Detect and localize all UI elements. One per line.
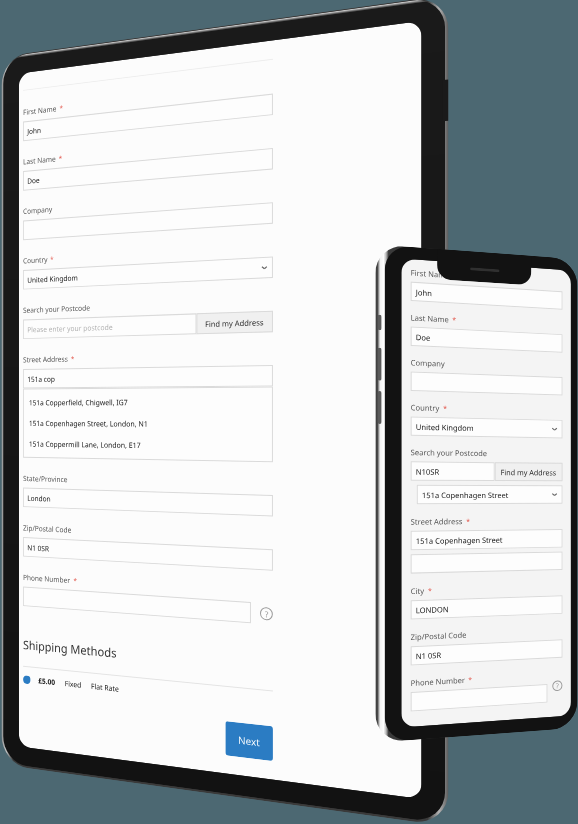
staticText: 151a Coppermill Lane, London, E17 xyxy=(29,439,141,450)
staticText: Phone Number xyxy=(411,675,465,688)
button[interactable]: Volume up xyxy=(377,348,382,381)
staticText: Fixed xyxy=(65,678,81,690)
button[interactable] xyxy=(411,551,562,574)
staticText: * xyxy=(468,674,472,685)
staticText: First Name xyxy=(23,104,57,117)
staticText: Phone Number xyxy=(23,572,71,585)
button[interactable]: United Kingdom xyxy=(23,256,273,290)
staticText: Find my Address xyxy=(205,317,264,329)
button[interactable]: Please enter your postcode xyxy=(23,313,196,339)
staticText: Last Name xyxy=(23,154,56,166)
staticText: Company xyxy=(23,204,53,216)
staticText: Street Address xyxy=(411,516,463,527)
button[interactable]: 151a Copenhagen Street, London, N1 xyxy=(23,413,273,436)
staticText: Last Name xyxy=(411,312,449,324)
button[interactable]: LONDON xyxy=(411,595,562,620)
staticText: First Name xyxy=(411,267,450,280)
staticText: United Kingdom xyxy=(416,422,474,433)
staticText: Find my Address xyxy=(500,467,557,477)
button[interactable]: N1 0SR xyxy=(411,639,562,666)
staticText: N1 0SR xyxy=(416,650,442,661)
staticText: 151a Copenhagen Street xyxy=(422,490,508,500)
staticText: London xyxy=(27,493,51,503)
staticText: * xyxy=(71,354,75,363)
button[interactable]: Help xyxy=(260,607,273,621)
staticText: Street Address xyxy=(23,354,68,364)
staticText: State/Province xyxy=(23,473,68,484)
button[interactable]: John xyxy=(411,282,562,310)
button[interactable] xyxy=(411,371,562,396)
staticText: Doe xyxy=(416,332,431,343)
staticText: Please enter your postcode xyxy=(27,322,113,334)
staticText: 151a Copenhagen Street, London, N1 xyxy=(29,418,149,429)
button[interactable]: Mute switch xyxy=(377,315,382,330)
button[interactable]: N1 0SR xyxy=(23,537,273,571)
staticText: Country xyxy=(23,255,48,265)
staticText: 151a Copenhagen Street xyxy=(416,535,502,546)
staticText: 151a cop xyxy=(27,374,55,384)
button[interactable]: John xyxy=(23,94,273,141)
staticText: N1 0SR xyxy=(27,543,49,553)
staticText: John xyxy=(416,287,432,298)
staticText: Flat Rate xyxy=(91,681,119,694)
button[interactable]: 151a Copenhagen Street xyxy=(417,485,563,504)
staticText: * xyxy=(452,314,456,325)
staticText: Doe xyxy=(27,175,40,186)
staticText: LONDON xyxy=(416,604,449,615)
button[interactable] xyxy=(23,586,251,623)
button[interactable]: Find my Address xyxy=(196,311,273,334)
staticText: * xyxy=(428,585,432,596)
staticText: * xyxy=(50,254,54,264)
staticText: John xyxy=(27,125,42,136)
button[interactable]: Find my Address xyxy=(495,462,562,481)
button[interactable]: Help xyxy=(552,680,562,691)
button[interactable]: 151a Copenhagen Street xyxy=(411,529,562,550)
button[interactable]: N10SR xyxy=(411,461,495,481)
button[interactable]: Power xyxy=(443,79,448,121)
staticText: Search your Postcode xyxy=(411,447,488,458)
button[interactable]: Next xyxy=(225,721,273,761)
staticText: 151a Copperfield, Chigwell, IG7 xyxy=(29,397,128,407)
staticText: Zip/Postal Code xyxy=(23,523,72,535)
staticText: United Kingdom xyxy=(27,273,78,285)
staticText: ? xyxy=(556,681,559,690)
staticText: Zip/Postal Code xyxy=(411,629,467,642)
staticText: Country xyxy=(411,402,440,413)
staticText: * xyxy=(443,403,447,413)
button[interactable]: 151a Copperfield, Chigwell, IG7 xyxy=(23,390,273,413)
button[interactable]: Doe xyxy=(23,148,273,191)
staticText: Next xyxy=(238,733,260,749)
staticText: * xyxy=(466,516,470,526)
staticText: Company xyxy=(411,357,445,369)
button[interactable] xyxy=(23,202,273,240)
button[interactable]: 151a Coppermill Lane, London, E17 xyxy=(23,433,273,458)
staticText: ? xyxy=(265,608,269,620)
staticText: * xyxy=(59,153,63,163)
button[interactable]: Doe xyxy=(411,327,562,353)
staticText: Shipping Methods xyxy=(23,637,117,662)
staticText: Search your Postcode xyxy=(23,303,90,315)
staticText: £5.00 xyxy=(38,676,55,687)
button[interactable]: London xyxy=(23,487,273,516)
staticText: * xyxy=(73,576,78,585)
button[interactable]: United Kingdom xyxy=(411,416,562,438)
button[interactable]: 151a cop xyxy=(23,365,273,388)
staticText: N10SR xyxy=(416,466,440,477)
staticText: * xyxy=(60,103,64,113)
button[interactable] xyxy=(411,684,547,711)
staticText: City xyxy=(411,585,425,596)
button[interactable]: Volume down xyxy=(377,391,382,424)
